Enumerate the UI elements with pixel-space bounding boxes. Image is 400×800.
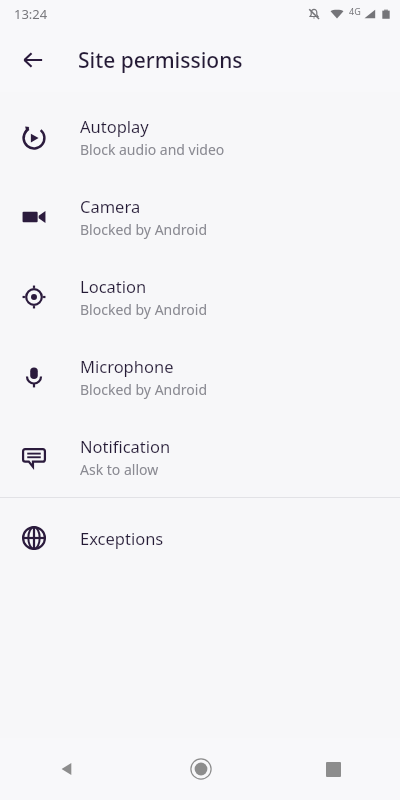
staticText: 4G [349, 5, 361, 17]
button[interactable]: Microphone [0, 337, 400, 417]
button[interactable]: Exceptions [0, 498, 400, 578]
button[interactable]: Back [0, 738, 134, 800]
button[interactable]: Recent apps [267, 738, 400, 800]
button[interactable]: Camera [0, 177, 400, 257]
staticText: Blocked by Android [80, 380, 208, 399]
staticText: 13:24 [14, 5, 48, 23]
button[interactable]: Autoplay [0, 97, 400, 177]
button[interactable]: Back [10, 37, 56, 83]
staticText: Blocked by Android [80, 220, 208, 239]
staticText: Ask to allow [80, 460, 159, 479]
button[interactable]: Notification [0, 417, 400, 497]
button[interactable]: Home [134, 738, 267, 800]
staticText: Location [80, 275, 147, 297]
staticText: Exceptions [80, 527, 164, 549]
staticText: Microphone [80, 355, 174, 377]
staticText: Notification [80, 435, 171, 457]
staticText: Autoplay [80, 115, 149, 137]
button[interactable]: Location [0, 257, 400, 337]
staticText: Camera [80, 195, 141, 217]
staticText: Site permissions [78, 46, 243, 75]
staticText: Block audio and video [80, 140, 225, 159]
staticText: Blocked by Android [80, 300, 208, 319]
